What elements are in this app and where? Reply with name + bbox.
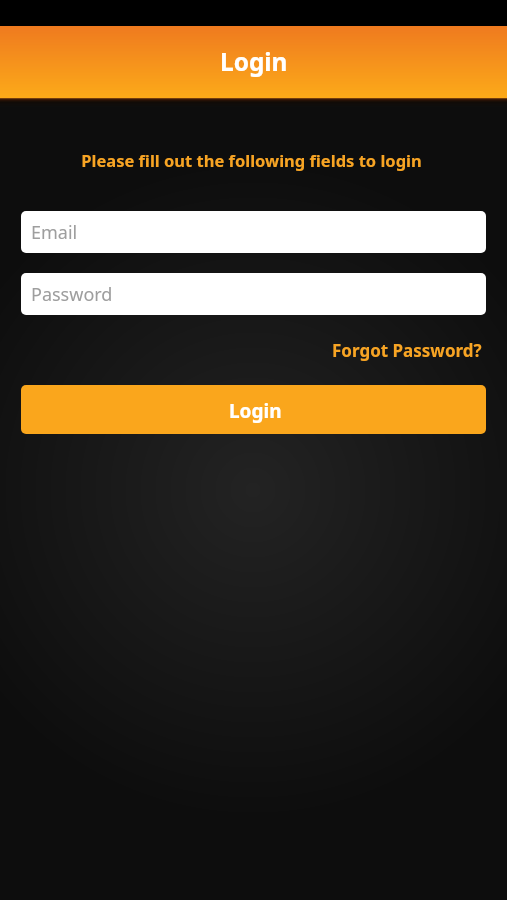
- button[interactable]: Email: [21, 211, 486, 253]
- button[interactable]: Password: [21, 273, 486, 315]
- staticText: Email: [31, 220, 78, 245]
- button[interactable]: Login: [21, 385, 486, 434]
- staticText: Login: [229, 398, 282, 424]
- staticText: Login: [220, 45, 288, 78]
- button[interactable]: Forgot Password?: [318, 333, 507, 368]
- staticText: Password: [31, 282, 113, 307]
- staticText: Please fill out the following fields to …: [0, 149, 505, 171]
- staticText: Forgot Password?: [332, 339, 482, 362]
